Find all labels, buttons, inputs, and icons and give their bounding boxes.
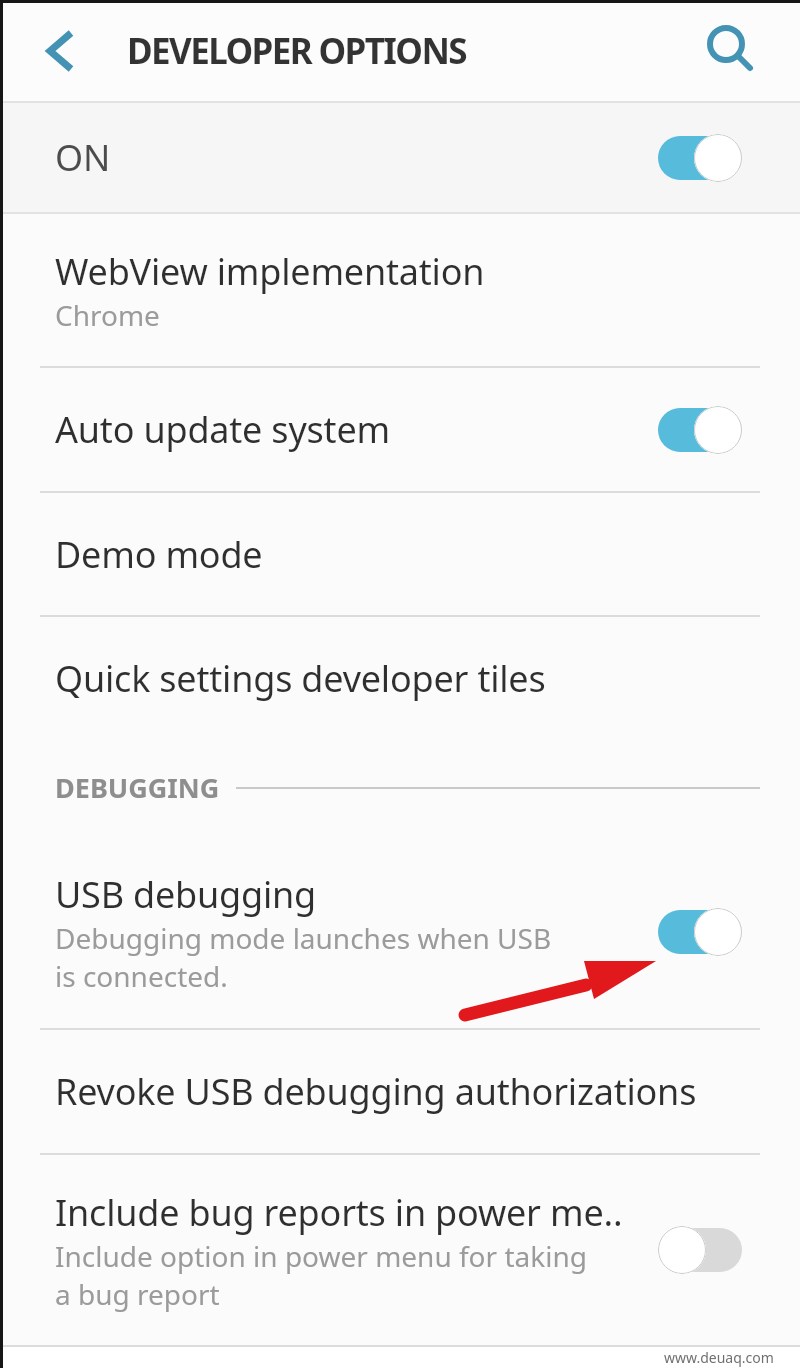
staticText: WebView implementation [55, 247, 485, 296]
button[interactable]: Demo mode [0, 493, 800, 615]
button[interactable] [34, 25, 86, 77]
staticText: DEBUGGING [55, 769, 220, 806]
staticText: Revoke USB debugging authorizations [55, 1067, 697, 1116]
button[interactable]: ON [0, 103, 800, 212]
button[interactable]: Auto update system [0, 368, 800, 491]
staticText: Include bug reports in power me.. [55, 1188, 623, 1237]
button[interactable]: Include bug reports in power me.. [0, 1155, 800, 1345]
staticText: USB debugging [55, 870, 317, 919]
staticText: Include option in power menu for taking [55, 1237, 587, 1275]
staticText: www.deuaq.com [664, 1348, 774, 1367]
staticText: Auto update system [55, 405, 390, 454]
button[interactable]: WebView implementation [0, 214, 800, 366]
staticText: a bug report [55, 1275, 220, 1313]
staticText: Debugging mode launches when USB [55, 919, 552, 957]
staticText: DEVELOPER OPTIONS [127, 27, 466, 75]
button[interactable]: USB debugging [0, 836, 800, 1028]
staticText: ON [55, 133, 658, 182]
button[interactable] [702, 23, 758, 79]
button[interactable]: Quick settings developer tiles [0, 617, 800, 739]
staticText: Quick settings developer tiles [55, 654, 546, 703]
staticText: Chrome [55, 296, 160, 334]
button[interactable]: Revoke USB debugging authorizations [0, 1030, 800, 1153]
staticText: Demo mode [55, 530, 263, 579]
staticText: is connected. [55, 957, 228, 995]
